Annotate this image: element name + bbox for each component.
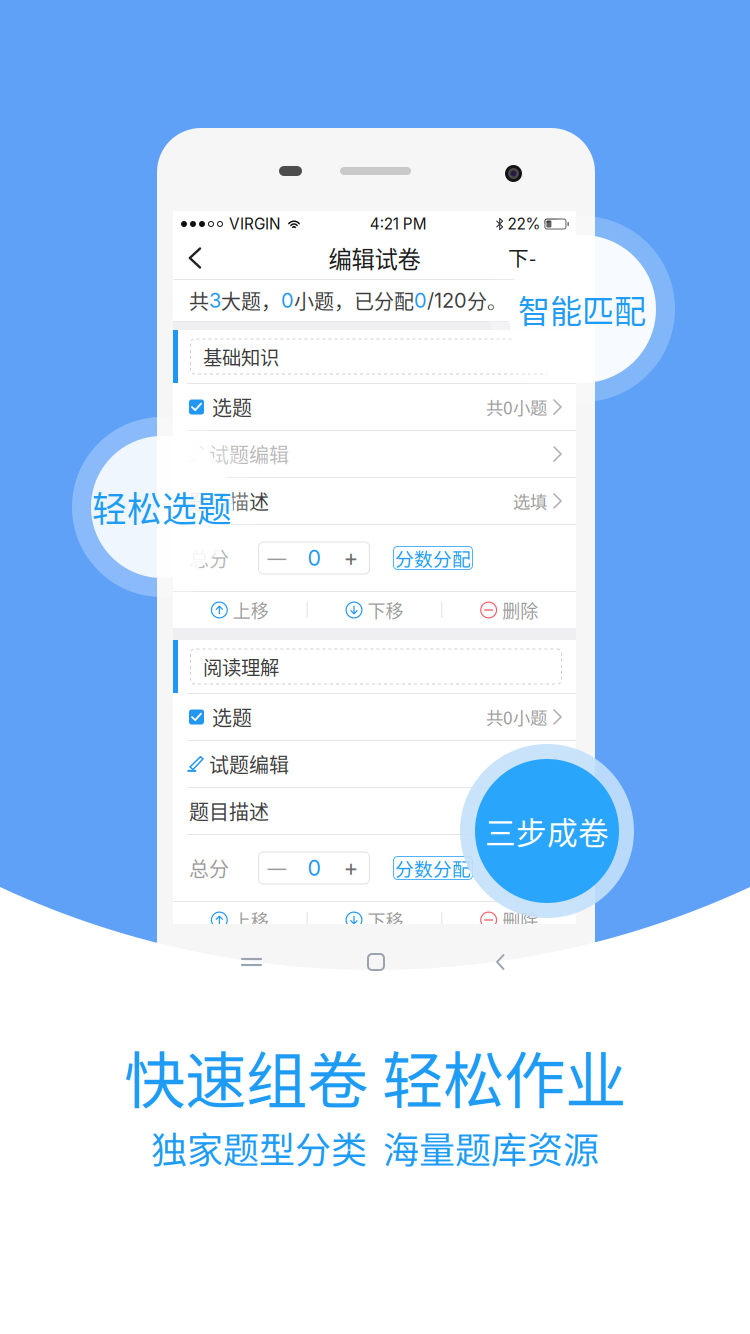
staticText: 总分 bbox=[189, 853, 229, 882]
button[interactable]: 删除 bbox=[442, 901, 576, 939]
staticText: 题目描述 bbox=[189, 486, 269, 515]
staticText: — bbox=[267, 857, 286, 879]
staticText: 轻松选题 bbox=[92, 482, 232, 532]
staticText: 22% bbox=[507, 215, 540, 233]
staticText: 共 bbox=[189, 286, 209, 315]
staticText: 0 bbox=[414, 288, 427, 313]
staticText: 分。 bbox=[467, 286, 507, 315]
button[interactable]: — bbox=[259, 541, 295, 575]
staticText: 删除 bbox=[502, 907, 538, 933]
button[interactable]: 上移 bbox=[173, 901, 307, 939]
staticText: 大题， bbox=[221, 286, 281, 315]
staticText: 试题编辑 bbox=[209, 439, 289, 468]
staticText: 独家题型分类 海量题库资源 bbox=[151, 1122, 599, 1174]
staticText: 下- bbox=[508, 242, 536, 272]
button[interactable]: 下移 bbox=[308, 901, 441, 939]
staticText: 阅读理解 bbox=[203, 652, 279, 680]
button[interactable]: 下- bbox=[495, 236, 549, 278]
staticText: 小题，已分配 bbox=[294, 286, 414, 315]
staticText: 编辑试卷 bbox=[328, 241, 420, 275]
staticText: 下移 bbox=[367, 907, 403, 933]
staticText: — bbox=[267, 547, 286, 569]
staticText: 智能匹配 bbox=[518, 286, 646, 332]
staticText: + bbox=[343, 544, 358, 572]
button[interactable]: 分数分配 bbox=[393, 546, 473, 570]
staticText: 总分 bbox=[189, 543, 229, 572]
staticText: + bbox=[343, 854, 358, 882]
staticText: 上移 bbox=[233, 907, 269, 933]
staticText: 下移 bbox=[367, 597, 403, 623]
staticText: 0 bbox=[307, 545, 320, 571]
staticText: 试题编辑 bbox=[209, 749, 289, 778]
staticText: 题目描述 bbox=[189, 796, 269, 825]
staticText: 分数分配 bbox=[395, 854, 471, 881]
staticText: 删除 bbox=[502, 597, 538, 623]
staticText: 基础知识 bbox=[203, 342, 279, 370]
staticText: 上移 bbox=[233, 597, 269, 623]
staticText: VIRGIN bbox=[229, 215, 281, 233]
button[interactable]: 删除 bbox=[442, 591, 576, 629]
staticText: 选填 bbox=[513, 488, 547, 514]
staticText: 分数分配 bbox=[395, 544, 471, 571]
button[interactable]: 上移 bbox=[173, 591, 307, 629]
button[interactable]: 主页 bbox=[346, 942, 406, 982]
button[interactable]: 选题 bbox=[173, 694, 576, 740]
staticText: 4:21 PM bbox=[370, 215, 427, 233]
button[interactable]: + bbox=[333, 541, 369, 575]
staticText: 快速组卷 轻松作业 bbox=[124, 1032, 626, 1121]
staticText: 选题 bbox=[212, 392, 252, 421]
staticText: 共0小题 bbox=[486, 704, 547, 730]
button[interactable]: 返回 bbox=[173, 237, 217, 279]
button[interactable]: 题目描述 bbox=[173, 788, 576, 834]
staticText: 0 bbox=[281, 288, 294, 313]
button[interactable]: 试题编辑 bbox=[173, 431, 576, 477]
button[interactable]: 下移 bbox=[308, 591, 441, 629]
staticText: 选题 bbox=[212, 702, 252, 731]
staticText: 共0小题 bbox=[486, 394, 547, 420]
staticText: 0 bbox=[307, 855, 320, 881]
button[interactable]: 题目描述 bbox=[173, 478, 576, 524]
staticText: /120 bbox=[427, 288, 467, 313]
button[interactable]: + bbox=[333, 851, 369, 885]
button[interactable]: 试题编辑 bbox=[173, 741, 576, 787]
button[interactable]: 返回 bbox=[470, 942, 530, 982]
button[interactable]: 分数分配 bbox=[393, 856, 473, 880]
button[interactable]: 菜单 bbox=[221, 942, 281, 982]
button[interactable]: 选题 bbox=[173, 384, 576, 430]
staticText: 3 bbox=[209, 288, 221, 313]
button[interactable]: — bbox=[259, 851, 295, 885]
staticText: 三步成卷 bbox=[485, 809, 609, 853]
